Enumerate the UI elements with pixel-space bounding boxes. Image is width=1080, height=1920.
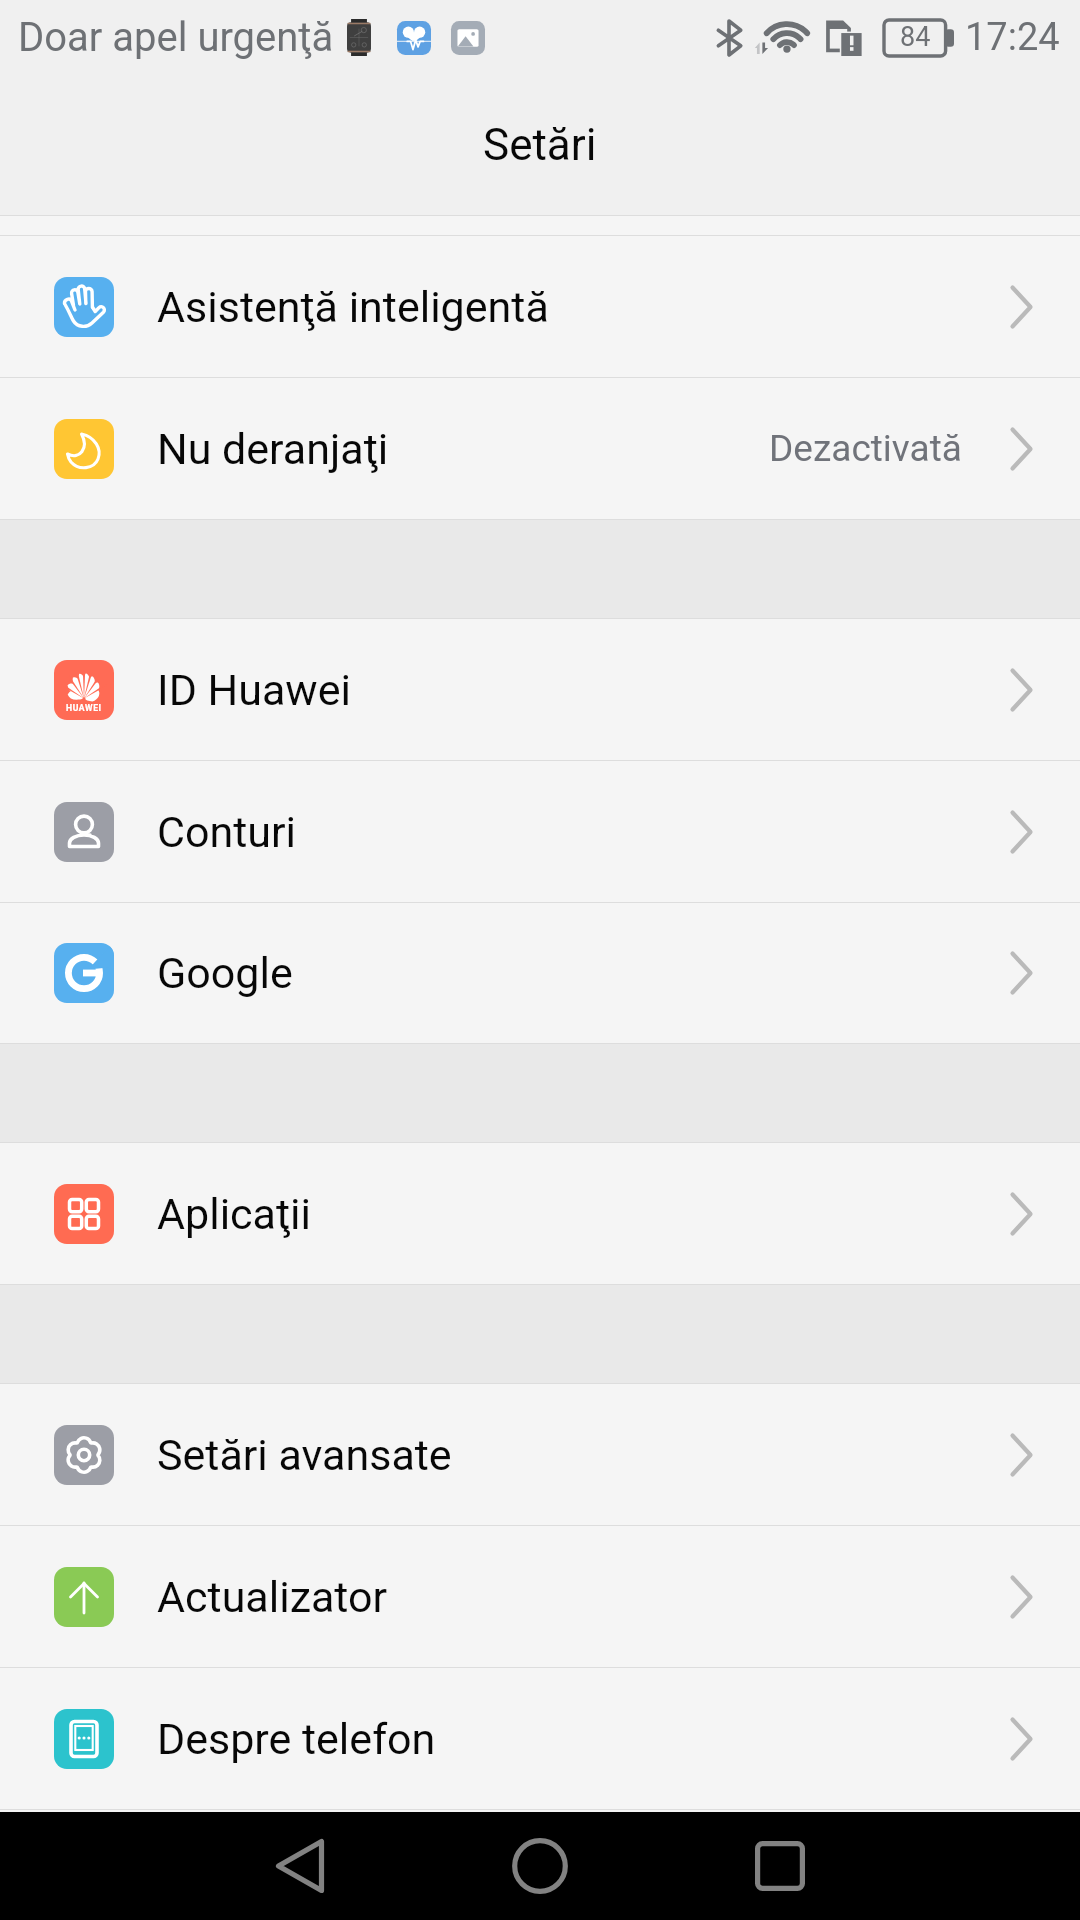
button[interactable]: Actualizator (0, 1526, 1080, 1667)
button[interactable]: Conturi (0, 761, 1080, 902)
staticText: Setări avansate (157, 1430, 452, 1480)
button[interactable]: Aplicaţii (0, 1143, 1080, 1284)
button[interactable]: Setări avansate (0, 1384, 1080, 1525)
button[interactable]: Nu deranjaţi (0, 378, 1080, 519)
staticText: Aplicaţii (157, 1189, 311, 1239)
staticText: Asistenţă inteligentă (157, 282, 549, 332)
staticText: Conturi (157, 807, 297, 857)
staticText: Setări (483, 119, 597, 171)
staticText: Doar apel urgenţă (18, 14, 334, 61)
staticText: 17:24 (965, 15, 1060, 60)
button[interactable]: Despre telefon (0, 1668, 1080, 1809)
staticText: Dezactivată (769, 427, 962, 470)
button[interactable]: Asistenţă inteligentă (0, 236, 1080, 377)
button[interactable]: Google (0, 903, 1080, 1043)
staticText: Google (157, 948, 293, 998)
staticText: 84 (900, 21, 931, 53)
button[interactable]: Back (180, 1812, 420, 1920)
staticText: Nu deranjaţi (157, 424, 389, 474)
button[interactable]: Recents (660, 1812, 900, 1920)
staticText: Actualizator (157, 1572, 388, 1622)
button[interactable]: HUAWEI (0, 619, 1080, 760)
button[interactable]: Home (420, 1812, 660, 1920)
staticText: Despre telefon (157, 1714, 436, 1764)
staticText: ID Huawei (157, 665, 351, 715)
staticText: HUAWEI (66, 703, 102, 713)
